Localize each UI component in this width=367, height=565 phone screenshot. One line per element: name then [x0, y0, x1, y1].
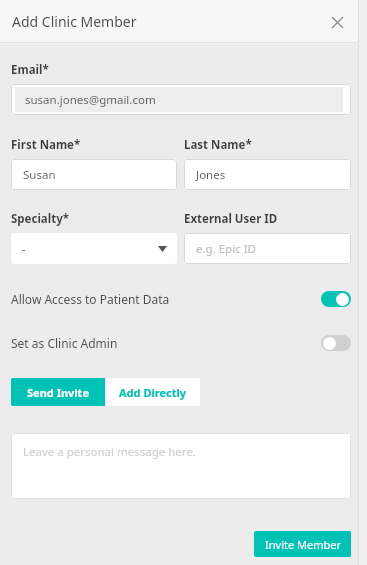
staticText: Set as Clinic Admin [11, 335, 321, 351]
staticText: Susan [23, 167, 56, 183]
button[interactable]: Set as Clinic Admin [11, 335, 351, 351]
button[interactable]: Allow Access to Patient Data [11, 291, 351, 307]
staticText: Leave a personal message here. [23, 444, 196, 460]
button[interactable]: Add Directly [105, 378, 200, 406]
button[interactable]: e.g. Epic ID [184, 233, 351, 264]
button[interactable]: Close [325, 10, 349, 34]
staticText: Allow Access to Patient Data [11, 291, 321, 307]
button[interactable]: Toggle off [321, 335, 351, 351]
staticText: Email* [11, 62, 49, 78]
staticText: First Name* [11, 137, 81, 153]
staticText: susan.jones@gmail.com [25, 92, 156, 108]
staticText: Jones [196, 167, 226, 183]
staticText: Last Name* [184, 137, 252, 153]
button[interactable]: susan.jones@gmail.com [11, 84, 351, 115]
staticText: Send Invite [27, 385, 89, 400]
staticText: External User ID [184, 211, 278, 227]
staticText: - [22, 241, 26, 257]
staticText: Invite Member [265, 537, 341, 552]
button[interactable]: Susan [11, 159, 177, 190]
button[interactable]: Send Invite [11, 378, 105, 406]
button[interactable]: - [11, 233, 177, 264]
button[interactable]: Leave a personal message here. [11, 433, 351, 499]
staticText: Add Clinic Member [12, 12, 137, 31]
button[interactable]: Jones [184, 159, 351, 190]
staticText: Add Directly [119, 385, 186, 400]
staticText: e.g. Epic ID [196, 241, 256, 257]
button[interactable]: Toggle on [321, 291, 351, 307]
button[interactable]: Invite Member [254, 531, 351, 557]
staticText: Specialty* [11, 211, 69, 227]
